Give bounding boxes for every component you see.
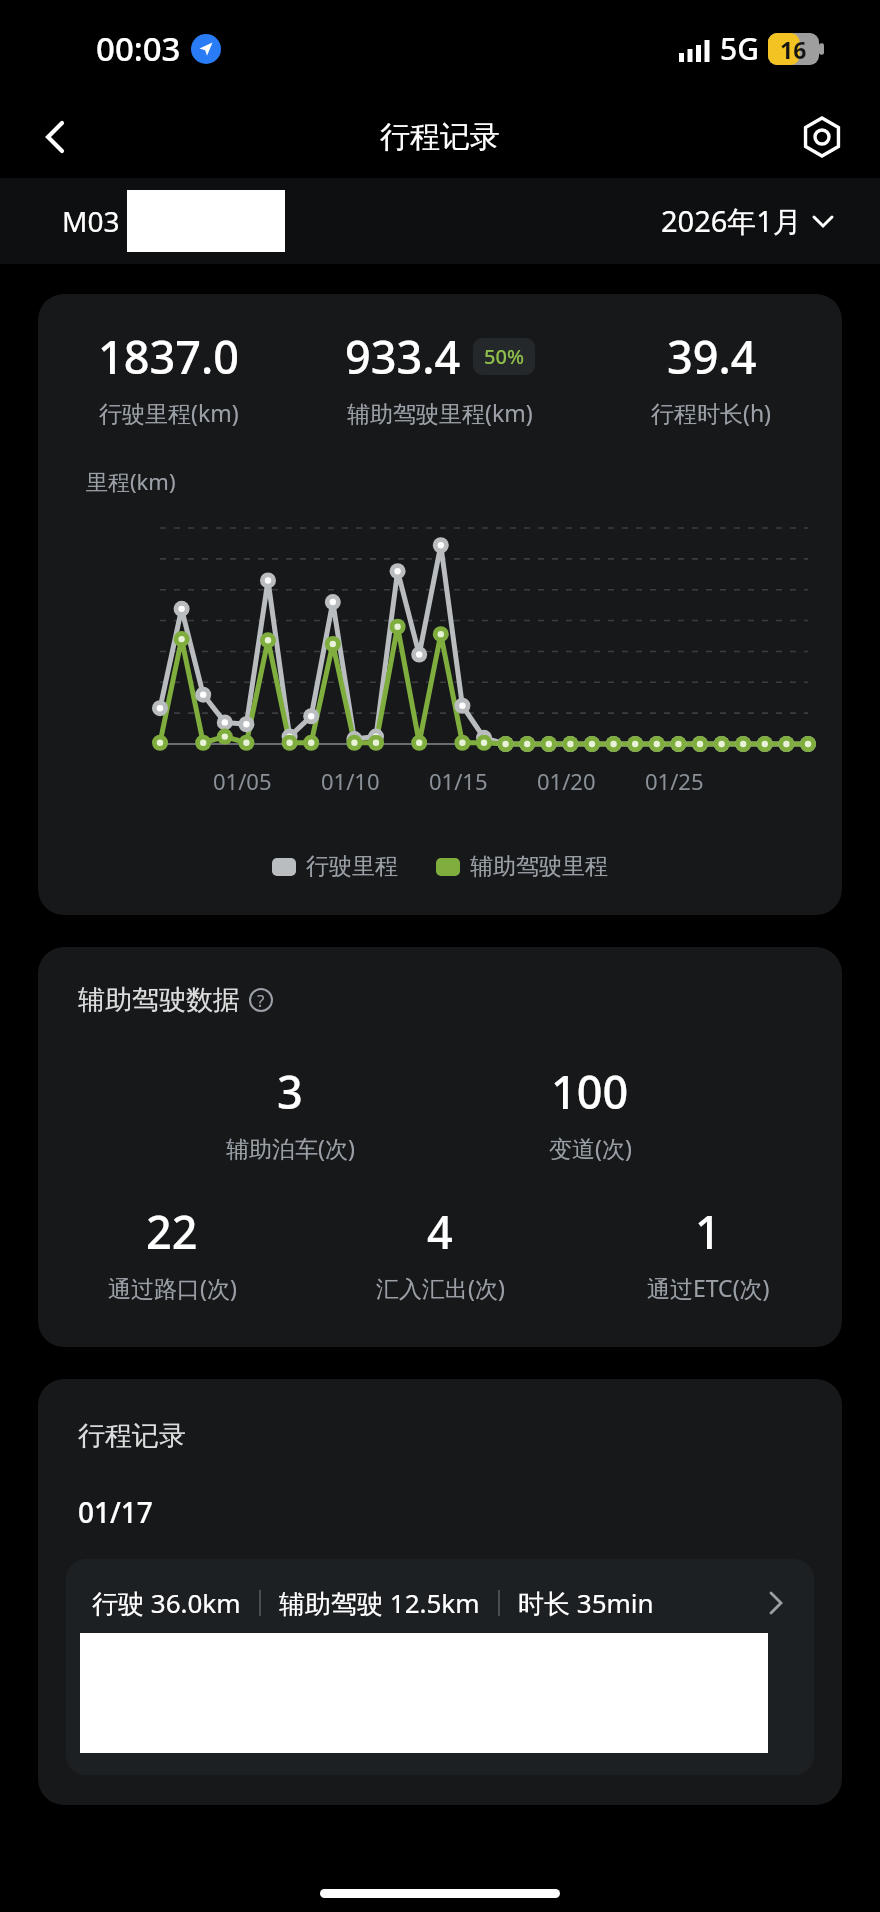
staticText: 50% (484, 343, 524, 370)
staticText: 辅助驾驶 12.5km (279, 1585, 480, 1621)
staticText: 5G (720, 28, 759, 69)
staticText: 1 (695, 1201, 721, 1262)
staticText: 16 (780, 34, 807, 65)
staticText: 01/10 (321, 766, 380, 796)
staticText: 行程记录 (78, 1419, 186, 1453)
staticText: 辅助驾驶数据 (78, 983, 240, 1017)
staticText: 辅助驾驶里程 (470, 852, 608, 881)
staticText: 22 (146, 1201, 198, 1262)
staticText: 行驶里程(km) (99, 397, 239, 428)
staticText: 01/15 (429, 766, 488, 796)
staticText: 01/05 (213, 766, 272, 796)
staticText: 4 (427, 1201, 453, 1262)
button[interactable]: 2026年1月 (661, 201, 836, 241)
staticText: 01/20 (537, 766, 596, 796)
button[interactable]: Back (28, 110, 82, 164)
staticText: 汇入汇出(次) (376, 1272, 505, 1303)
staticText: 00:03 (96, 26, 181, 71)
staticText: 39.4 (667, 326, 757, 387)
staticText: 1837.0 (98, 326, 239, 387)
staticText: 行程记录 (380, 118, 500, 156)
staticText: M03 (62, 202, 127, 240)
staticText: ? (257, 989, 265, 1012)
button[interactable]: 行驶 36.0km (66, 1559, 814, 1775)
staticText: 3 (277, 1061, 303, 1122)
staticText: 辅助驾驶里程(km) (347, 397, 533, 428)
staticText: 01/17 (78, 1493, 153, 1531)
staticText: 100 (551, 1061, 629, 1122)
button[interactable]: 辅助驾驶数据 (78, 983, 282, 1017)
button[interactable]: Settings (796, 111, 848, 163)
staticText: 行程时长(h) (651, 397, 772, 428)
staticText: 里程(km) (86, 466, 176, 496)
staticText: 2026年1月 (661, 201, 802, 241)
staticText: 行驶里程 (306, 852, 398, 881)
staticText: 01/25 (645, 766, 704, 796)
staticText: 通过ETC(次) (647, 1272, 770, 1303)
staticText: 933.4 (345, 326, 461, 387)
staticText: 行驶 36.0km (92, 1585, 241, 1621)
staticText: 通过路口(次) (108, 1272, 237, 1303)
staticText: 变道(次) (549, 1132, 632, 1163)
staticText: 时长 35min (518, 1585, 654, 1621)
staticText: 辅助泊车(次) (226, 1132, 355, 1163)
